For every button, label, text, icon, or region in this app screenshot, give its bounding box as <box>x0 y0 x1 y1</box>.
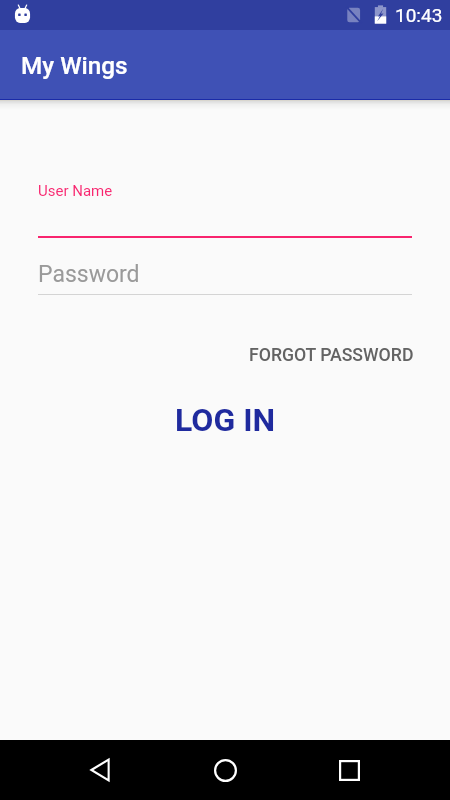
button[interactable]: User Name input field <box>38 182 412 240</box>
staticText: 10:43 <box>395 4 443 26</box>
staticText: Password <box>38 261 140 288</box>
staticText: My Wings <box>21 51 128 79</box>
button[interactable]: Recent apps <box>319 740 379 800</box>
button[interactable]: Home <box>195 740 255 800</box>
button[interactable]: FORGOT PASSWORD <box>245 339 418 372</box>
button[interactable]: LOG IN <box>161 395 290 445</box>
staticText: User Name <box>38 182 113 200</box>
button[interactable]: Back <box>70 740 130 800</box>
staticText: LOG IN <box>175 401 276 439</box>
staticText: FORGOT PASSWORD <box>249 345 414 366</box>
button[interactable]: Password input field <box>38 241 412 307</box>
